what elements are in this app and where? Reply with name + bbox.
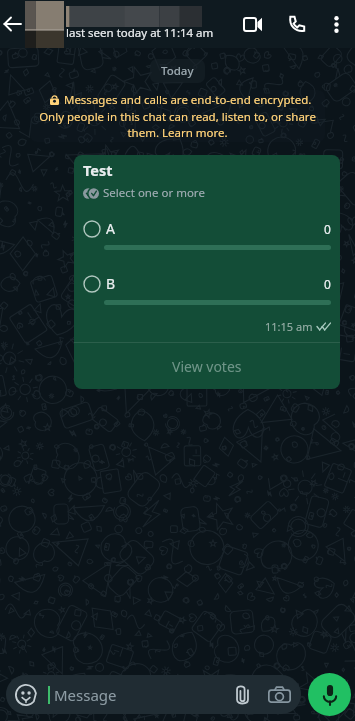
staticText: B bbox=[106, 274, 116, 293]
staticText: Message bbox=[54, 685, 117, 705]
button[interactable]: Emoji bbox=[6, 675, 301, 714]
button[interactable]: Messages and calls are end-to-end encryp… bbox=[38, 92, 317, 140]
button[interactable]: B bbox=[83, 274, 331, 305]
staticText: 0 bbox=[324, 276, 331, 292]
button[interactable]: A bbox=[83, 219, 331, 250]
button[interactable]: Emoji bbox=[14, 683, 38, 707]
button[interactable]: Voice call bbox=[274, 0, 320, 48]
button[interactable]: Camera bbox=[263, 679, 295, 711]
staticText: View votes bbox=[172, 357, 242, 376]
staticText: A bbox=[106, 219, 115, 238]
button[interactable]: Voice message bbox=[308, 673, 351, 716]
button[interactable]: View votes bbox=[74, 343, 340, 389]
button[interactable]: Attach bbox=[226, 679, 258, 711]
staticText: 0 bbox=[324, 221, 331, 237]
button[interactable]: More options bbox=[320, 0, 353, 48]
button[interactable]: Today bbox=[161, 63, 194, 79]
staticText: Test bbox=[83, 160, 113, 180]
button[interactable]: Back bbox=[0, 0, 25, 48]
staticText: Today bbox=[161, 63, 194, 79]
staticText: last seen today at 11:14 am bbox=[66, 25, 214, 41]
staticText: Select one or more bbox=[103, 185, 205, 201]
button[interactable]: Video call bbox=[230, 0, 274, 48]
staticText: Messages and calls are end-to-end encryp… bbox=[38, 92, 317, 140]
staticText: 11:15 am bbox=[265, 319, 313, 334]
